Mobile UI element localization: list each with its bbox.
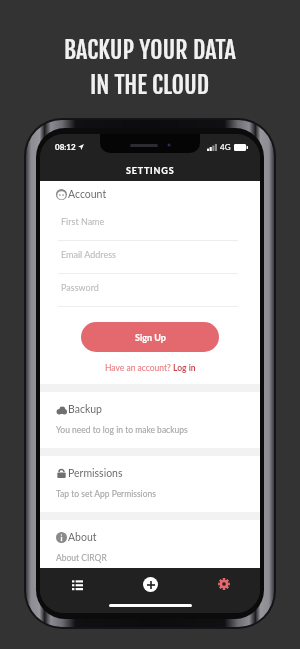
staticText: Tap to set App Permissions bbox=[56, 489, 156, 499]
staticText: SETTINGS bbox=[126, 165, 175, 176]
staticText: 4G bbox=[220, 142, 231, 152]
staticText: Account bbox=[68, 188, 107, 201]
staticText: Permissions bbox=[68, 467, 123, 480]
staticText: Sign Up bbox=[135, 332, 166, 343]
button[interactable]: About bbox=[40, 520, 260, 568]
staticText: First Name bbox=[61, 216, 105, 227]
button[interactable]: Backup bbox=[40, 392, 260, 448]
button[interactable]: List bbox=[40, 568, 114, 600]
staticText: Backup bbox=[68, 403, 103, 416]
staticText: 08:12 bbox=[55, 142, 76, 152]
staticText: About CIRQR bbox=[56, 553, 107, 563]
staticText: Email Address bbox=[61, 249, 116, 260]
staticText: IN THE CLOUD bbox=[90, 70, 210, 100]
button[interactable]: Settings bbox=[187, 568, 260, 600]
staticText: About bbox=[68, 531, 97, 544]
staticText: You need to log in to make backups bbox=[56, 425, 188, 435]
button[interactable]: Add bbox=[114, 568, 187, 600]
staticText: BACKUP YOUR DATA bbox=[64, 35, 236, 65]
staticText: Have an account? Log in bbox=[105, 363, 196, 373]
staticText: Password bbox=[61, 282, 99, 293]
button[interactable]: Have an account? Log in bbox=[40, 352, 260, 384]
button[interactable]: Permissions bbox=[40, 456, 260, 512]
button[interactable]: Sign Up bbox=[81, 322, 219, 352]
